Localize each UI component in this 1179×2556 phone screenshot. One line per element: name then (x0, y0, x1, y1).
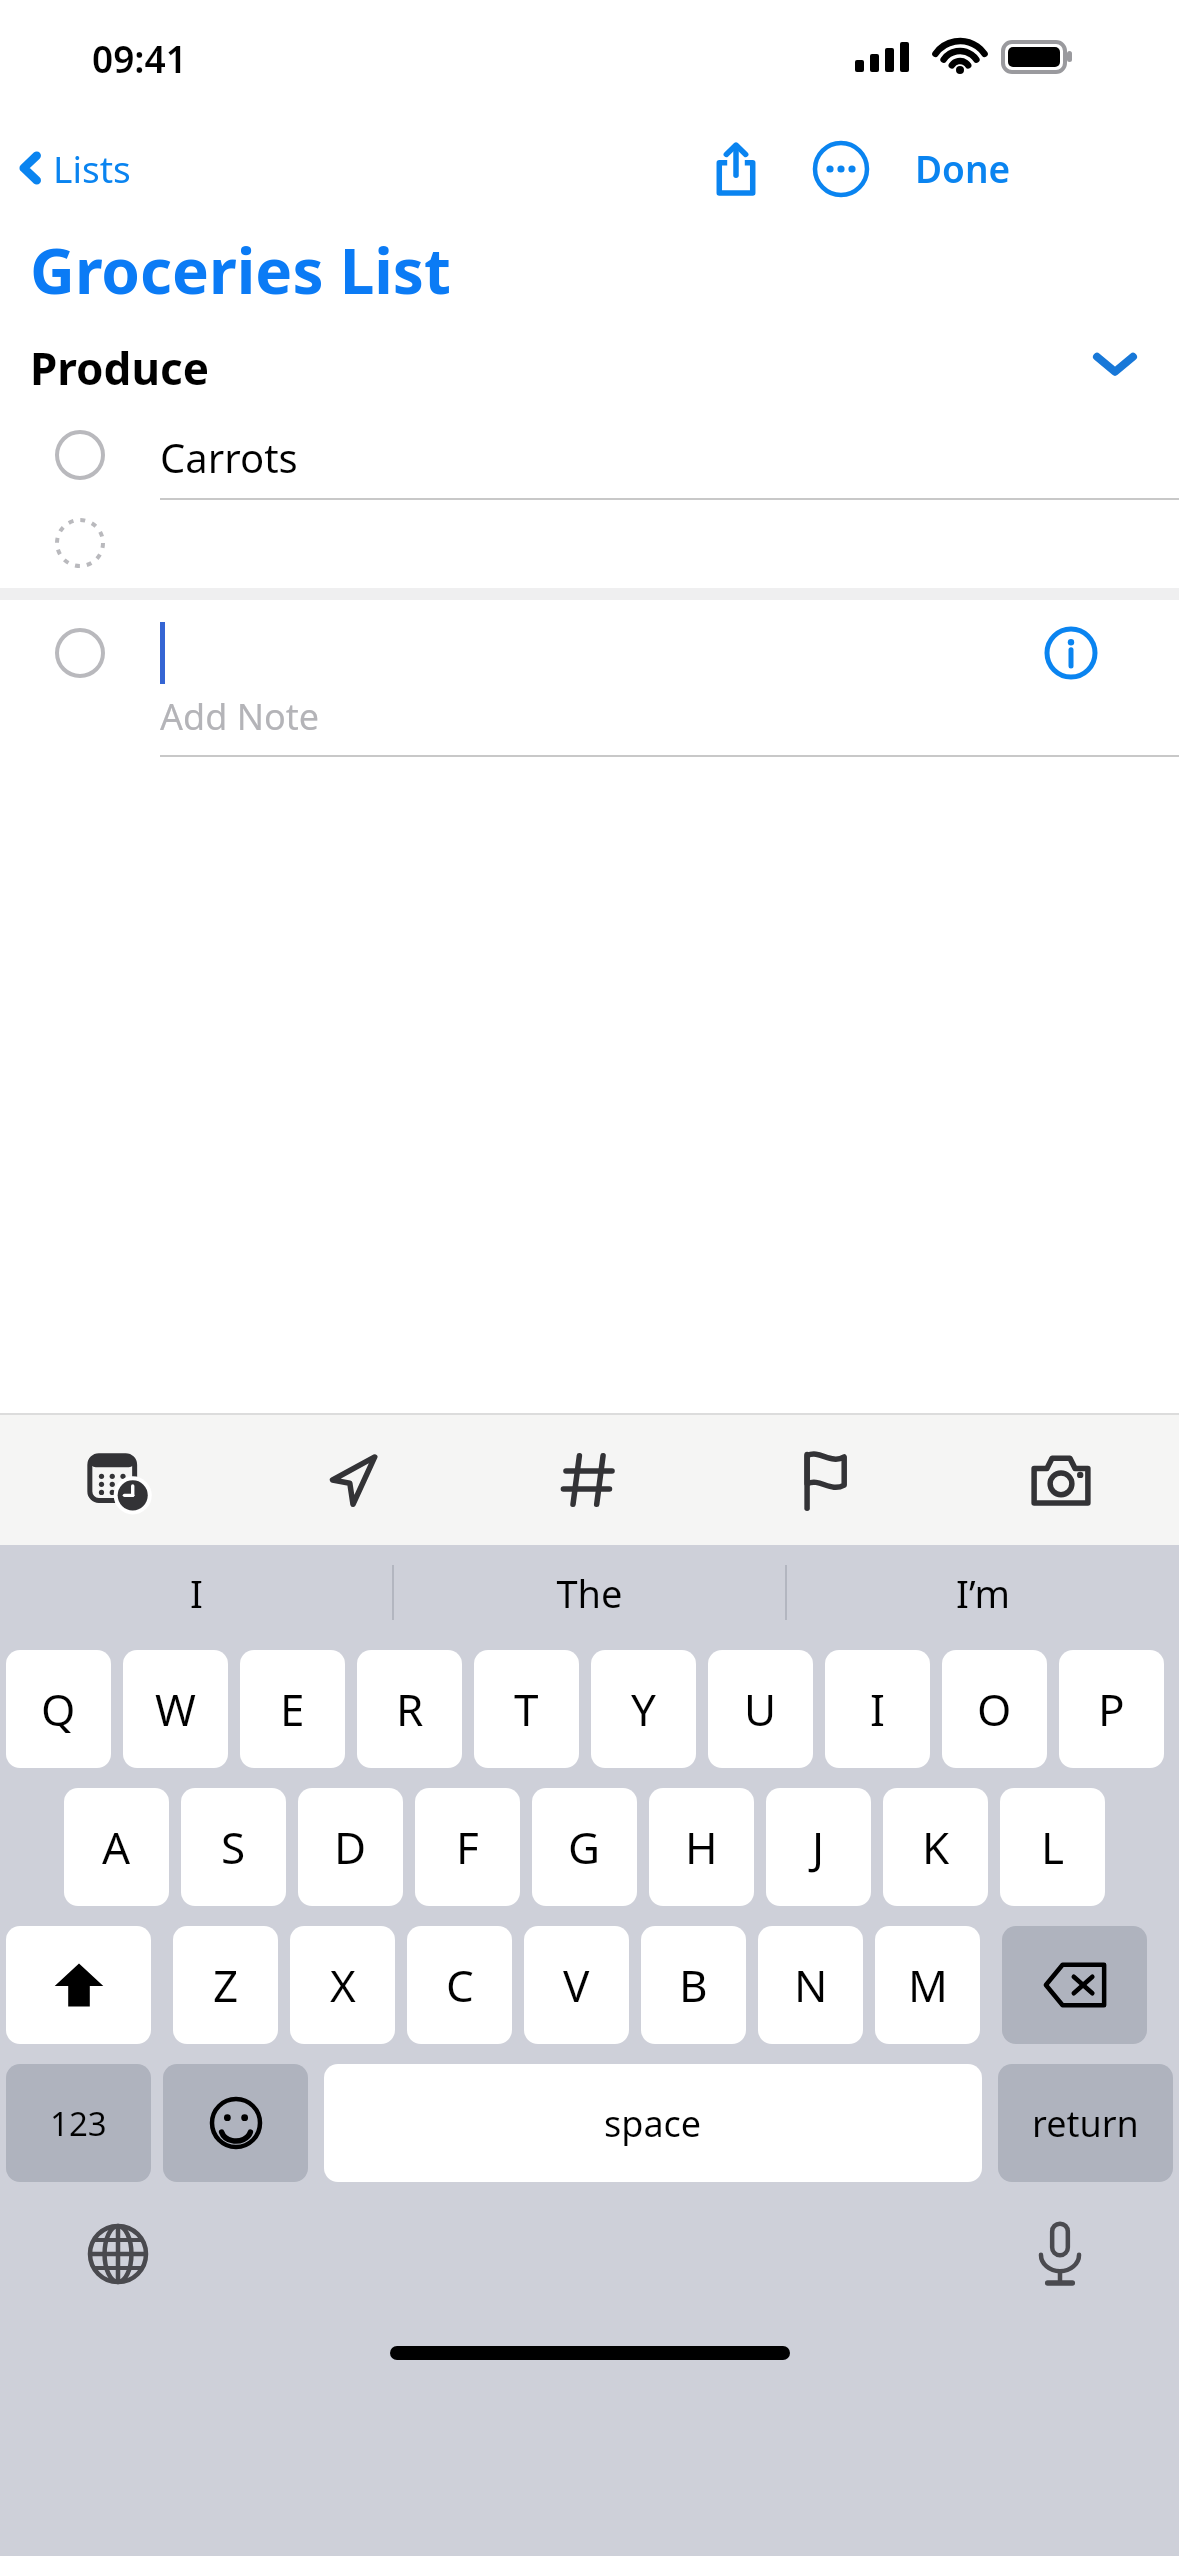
staticText: N (794, 1955, 828, 2015)
button[interactable]: M (875, 1926, 980, 2044)
button[interactable]: Add Note (0, 600, 1179, 765)
button[interactable]: P (1059, 1650, 1164, 1768)
button[interactable]: V (524, 1926, 629, 2044)
button[interactable]: The (393, 1545, 786, 1640)
button[interactable]: T (474, 1650, 579, 1768)
staticText: Groceries List (30, 228, 451, 312)
staticText: H (685, 1817, 718, 1877)
button[interactable]: Location (235, 1415, 471, 1545)
staticText: U (744, 1679, 777, 1739)
button[interactable]: L (1000, 1788, 1105, 1906)
button[interactable]: A (64, 1788, 169, 1906)
staticText: V (563, 1955, 590, 2015)
button[interactable]: Dictation (1020, 2214, 1100, 2294)
button[interactable]: O (942, 1650, 1047, 1768)
button[interactable]: Done (915, 125, 1011, 210)
button[interactable]: I (825, 1650, 930, 1768)
staticText: Add Note (160, 692, 320, 741)
staticText: T (514, 1679, 539, 1739)
button[interactable]: More options (805, 133, 877, 205)
staticText: Done (915, 143, 1011, 193)
staticText: S (221, 1817, 246, 1877)
button[interactable]: I’m (786, 1545, 1179, 1640)
button[interactable] (0, 500, 1179, 588)
staticText: J (812, 1817, 825, 1877)
button[interactable]: H (649, 1788, 754, 1906)
button[interactable]: F (415, 1788, 520, 1906)
button[interactable]: Shift (6, 1926, 151, 2044)
staticText: Carrots (160, 430, 298, 484)
staticText: F (456, 1817, 479, 1877)
button[interactable]: Lists (18, 125, 131, 210)
button[interactable]: S (181, 1788, 286, 1906)
button[interactable]: Details (1040, 622, 1102, 684)
staticText: B (679, 1955, 708, 2015)
staticText: Produce (30, 338, 209, 398)
button[interactable]: Camera (943, 1415, 1179, 1545)
button[interactable]: E (240, 1650, 345, 1768)
staticText: P (1098, 1679, 1125, 1739)
button[interactable]: K (883, 1788, 988, 1906)
staticText: return (1032, 2099, 1139, 2148)
staticText: W (155, 1679, 196, 1739)
staticText: Q (41, 1679, 76, 1739)
staticText: E (280, 1679, 305, 1739)
button[interactable]: Produce (0, 320, 1179, 408)
button[interactable]: Share (700, 133, 772, 205)
button[interactable]: Q (6, 1650, 111, 1768)
button[interactable]: C (407, 1926, 512, 2044)
staticText: I (870, 1679, 885, 1739)
button[interactable]: Backspace (1002, 1926, 1147, 2044)
button[interactable]: G (532, 1788, 637, 1906)
button[interactable]: Tag (471, 1415, 707, 1545)
staticText: 123 (50, 2101, 107, 2146)
button[interactable]: X (290, 1926, 395, 2044)
button[interactable]: D (298, 1788, 403, 1906)
staticText: I’m (956, 1567, 1010, 1619)
staticText: R (396, 1679, 424, 1739)
staticText: Lists (53, 143, 131, 193)
button[interactable]: Z (173, 1926, 278, 2044)
button[interactable]: Carrots (0, 408, 1179, 500)
staticText: D (334, 1817, 367, 1877)
staticText: M (908, 1955, 948, 2015)
button[interactable]: space (324, 2064, 982, 2182)
staticText: The (556, 1567, 623, 1619)
button[interactable]: Date and time (0, 1415, 235, 1545)
staticText: G (568, 1817, 601, 1877)
button[interactable]: Change keyboard (78, 2214, 158, 2294)
button[interactable]: Emoji (163, 2064, 308, 2182)
button[interactable]: I (0, 1545, 393, 1640)
staticText: 09:41 (92, 33, 187, 83)
button[interactable]: W (123, 1650, 228, 1768)
staticText: space (604, 2099, 702, 2148)
button[interactable]: J (766, 1788, 871, 1906)
button[interactable]: return (998, 2064, 1173, 2182)
staticText: C (446, 1955, 474, 2015)
staticText: K (922, 1817, 950, 1877)
button[interactable]: B (641, 1926, 746, 2044)
staticText: O (977, 1679, 1012, 1739)
staticText: L (1041, 1817, 1065, 1877)
staticText: Y (631, 1679, 656, 1739)
staticText: Z (213, 1955, 239, 2015)
button[interactable]: N (758, 1926, 863, 2044)
button[interactable]: 123 (6, 2064, 151, 2182)
button[interactable]: Y (591, 1650, 696, 1768)
staticText: I (190, 1567, 203, 1619)
staticText: A (102, 1817, 131, 1877)
staticText: X (330, 1955, 356, 2015)
button[interactable]: Flag (707, 1415, 943, 1545)
button[interactable]: R (357, 1650, 462, 1768)
button[interactable]: U (708, 1650, 813, 1768)
